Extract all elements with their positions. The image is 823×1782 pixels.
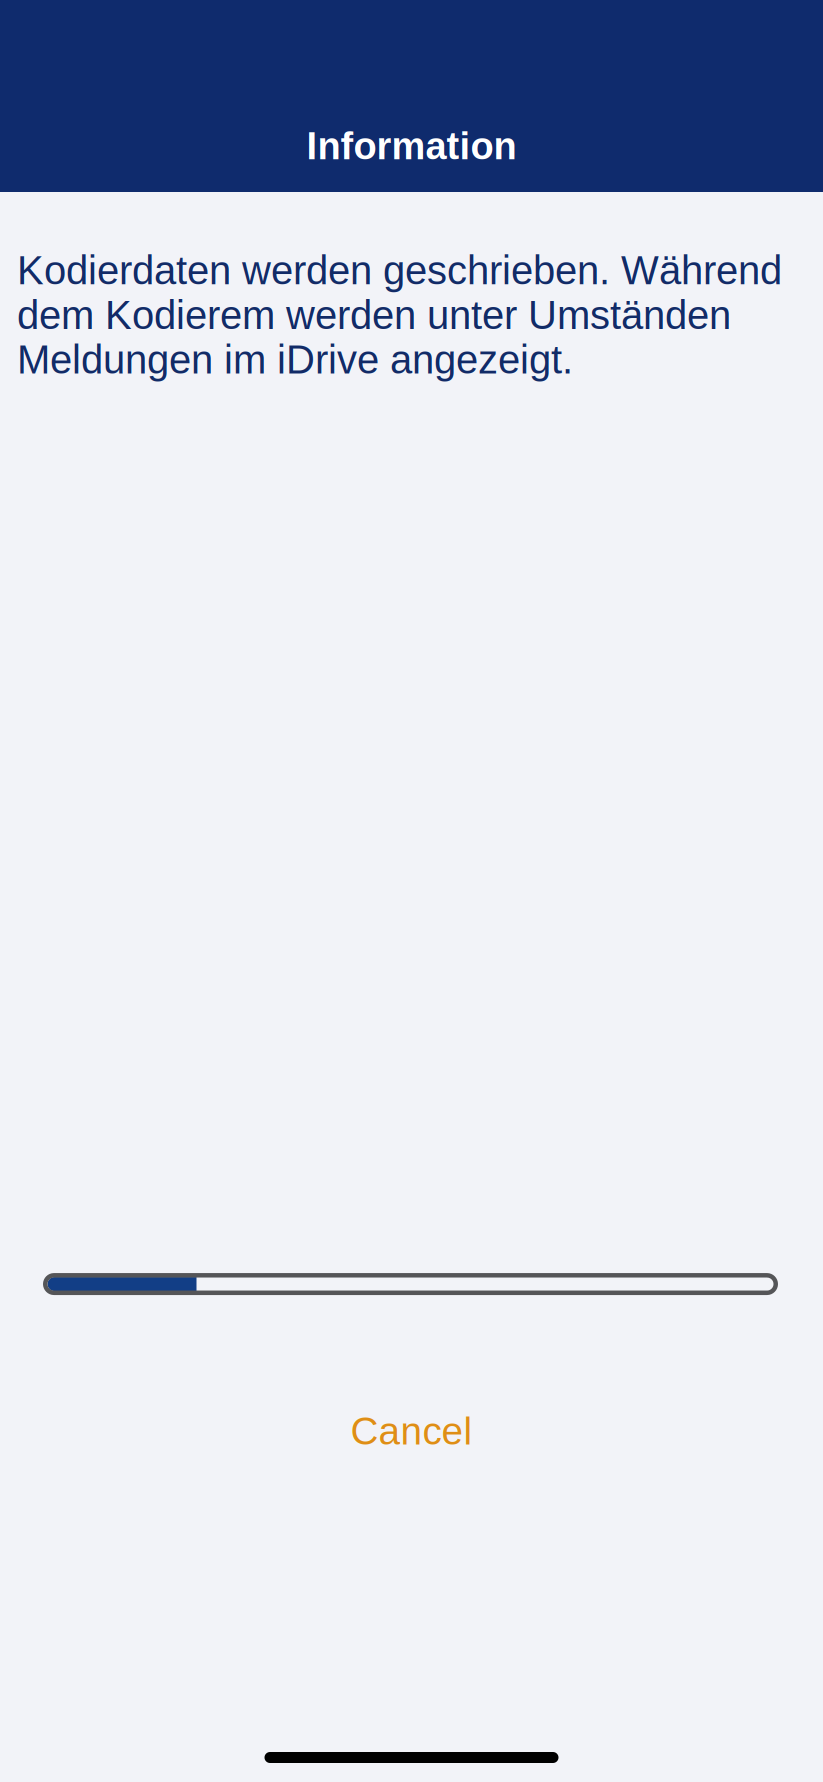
button[interactable]: Cancel — [0, 1393, 823, 1469]
staticText: Cancel — [350, 1409, 472, 1453]
staticText: Kodierdaten werden geschrieben. Während … — [17, 248, 782, 382]
staticText: Information — [306, 125, 516, 167]
